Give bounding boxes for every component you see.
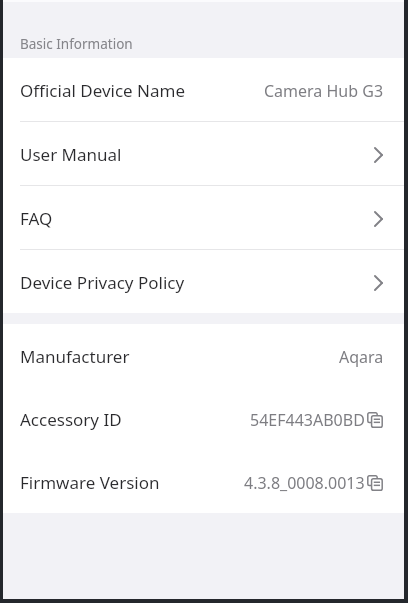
staticText: FAQ bbox=[20, 207, 53, 230]
button[interactable]: User Manual bbox=[3, 122, 404, 185]
staticText: 54EF443AB0BD bbox=[250, 409, 365, 431]
other: Open bbox=[366, 209, 384, 227]
staticText: Accessory ID bbox=[20, 408, 122, 431]
staticText: Firmware Version bbox=[20, 471, 160, 494]
staticText: Manufacturer bbox=[20, 345, 130, 368]
button[interactable]: Official Device Name bbox=[3, 58, 404, 121]
staticText: Official Device Name bbox=[20, 79, 186, 102]
button[interactable]: Copy bbox=[366, 474, 384, 492]
button[interactable]: FAQ bbox=[3, 186, 404, 249]
staticText: User Manual bbox=[20, 143, 122, 166]
other: Open bbox=[366, 145, 384, 163]
button[interactable]: Manufacturer bbox=[3, 324, 404, 387]
button[interactable]: Copy bbox=[366, 411, 384, 429]
button[interactable]: Device Privacy Policy bbox=[3, 250, 404, 313]
other: Open bbox=[366, 273, 384, 291]
button[interactable]: Firmware Version bbox=[3, 450, 404, 513]
staticText: Basic Information bbox=[20, 35, 133, 53]
button[interactable]: Accessory ID bbox=[3, 387, 404, 450]
staticText: Aqara bbox=[339, 346, 384, 368]
staticText: 4.3.8_0008.0013 bbox=[244, 472, 365, 494]
staticText: Device Privacy Policy bbox=[20, 271, 185, 294]
staticText: Camera Hub G3 bbox=[264, 80, 384, 102]
